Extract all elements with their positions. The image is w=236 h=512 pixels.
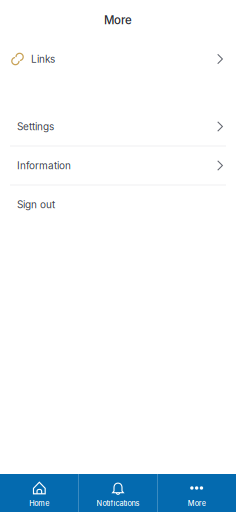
- staticText: Settings: [17, 120, 54, 133]
- button[interactable]: Home: [0, 474, 79, 512]
- button[interactable]: Settings: [0, 107, 236, 145]
- staticText: Sign out: [17, 198, 55, 211]
- staticText: Notifications: [96, 499, 139, 508]
- button[interactable]: Information: [0, 146, 236, 184]
- button[interactable]: Notifications: [79, 474, 157, 512]
- button[interactable]: Sign out: [0, 185, 236, 223]
- staticText: Information: [17, 159, 71, 172]
- staticText: Home: [29, 499, 49, 508]
- button[interactable]: More: [157, 474, 236, 512]
- staticText: More: [188, 499, 206, 508]
- staticText: More: [104, 13, 132, 27]
- staticText: Links: [31, 53, 55, 65]
- button[interactable]: Links: [0, 40, 236, 78]
